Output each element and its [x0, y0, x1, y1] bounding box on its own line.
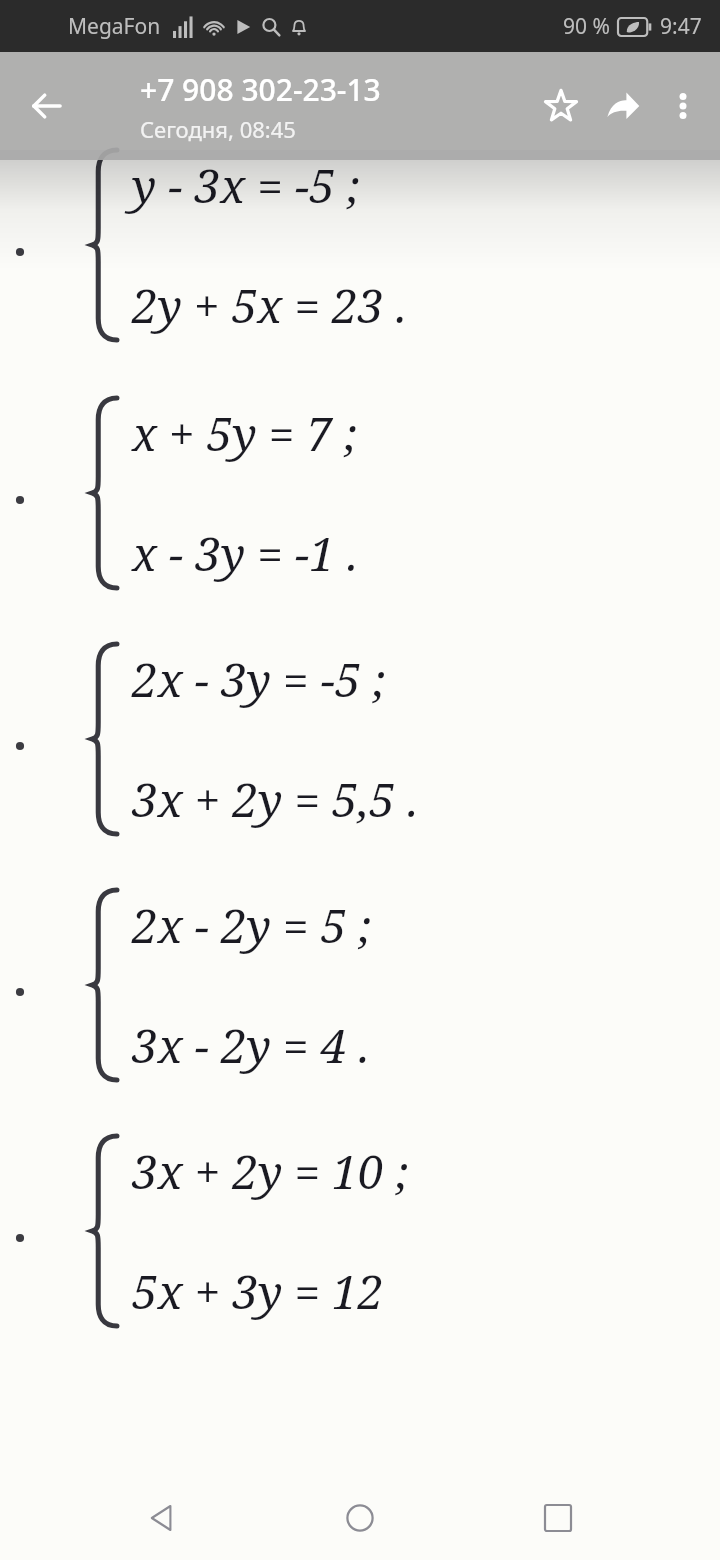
staticText: x − 3y = −1 . [132, 522, 359, 585]
button[interactable]: More options [654, 77, 712, 135]
staticText: MegaFon [68, 12, 161, 41]
staticText: 2y + 5x = 23 . [132, 274, 407, 337]
button[interactable]: Recent apps [522, 1482, 594, 1554]
staticText: 2x − 3y = −5 ; [132, 648, 386, 711]
button[interactable]: Back [16, 76, 76, 136]
staticText: 5x + 3y = 12 [132, 1260, 384, 1323]
staticText: +7 908 302-23-13 [140, 69, 381, 110]
button[interactable]: Favorite [530, 75, 592, 137]
button[interactable]: Home [324, 1482, 396, 1554]
button[interactable]: +7 908 302-23-13 [140, 69, 381, 144]
staticText: Сегодня, 08:45 [140, 114, 296, 144]
staticText: 2x − 2y = 5 ; [132, 894, 372, 957]
staticText: 3x − 2y = 4 . [132, 1014, 370, 1077]
button[interactable]: Share [592, 75, 654, 137]
staticText: 3x + 2y = 10 ; [132, 1140, 409, 1203]
button[interactable]: Back [126, 1482, 198, 1554]
staticText: 3x + 2y = 5,5 . [132, 768, 419, 831]
staticText: 9:47 [660, 12, 702, 41]
staticText: y − 3x = −5 ; [132, 154, 361, 217]
staticText: x + 5y = 7 ; [132, 402, 358, 465]
staticText: 90 % [563, 12, 610, 41]
